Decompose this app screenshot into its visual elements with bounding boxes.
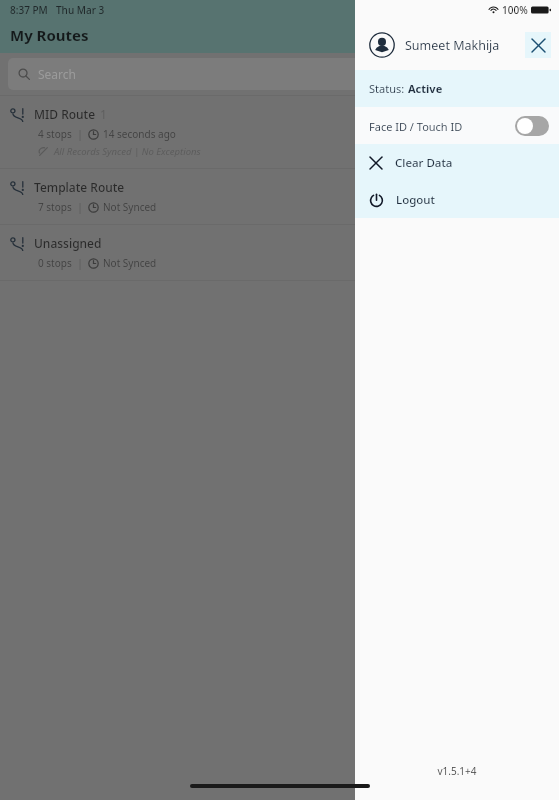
staticText: Clear Data: [395, 155, 453, 171]
staticText: Face ID / Touch ID: [369, 119, 463, 134]
staticText: 0 stops: [38, 256, 72, 270]
staticText: Search: [38, 66, 76, 82]
staticText: 14 seconds ago: [103, 127, 176, 141]
staticText: All Records Synced | No Exceptions: [54, 145, 201, 158]
staticText: 100%: [502, 3, 528, 17]
staticText: v1.5.1+4: [437, 764, 477, 778]
staticText: 1: [100, 106, 107, 122]
button[interactable]: Template Route: [0, 169, 559, 224]
staticText: Active: [408, 81, 443, 96]
button[interactable]: Unassigned: [0, 225, 559, 280]
staticText: 8:37 PM: [10, 3, 48, 17]
button[interactable]: Status:: [355, 70, 559, 107]
button[interactable]: Logout: [355, 181, 559, 218]
button[interactable]: Face ID toggle: [515, 116, 549, 136]
staticText: Thu Mar 3: [56, 3, 105, 17]
button[interactable]: Face ID / Touch ID: [355, 107, 559, 144]
staticText: Sumeet Makhija: [405, 37, 500, 54]
staticText: Logout: [396, 192, 435, 208]
staticText: MID Route: [34, 106, 96, 122]
button[interactable]: Close drawer: [525, 32, 551, 58]
staticText: Not Synced: [103, 200, 157, 214]
staticText: Unassigned: [34, 235, 102, 251]
staticText: Status:: [369, 81, 408, 96]
staticText: Not Synced: [103, 256, 157, 270]
staticText: My Routes: [10, 25, 89, 45]
staticText: Template Route: [34, 179, 125, 195]
button[interactable]: Search: [8, 58, 551, 90]
button[interactable]: Clear Data: [355, 144, 559, 181]
button[interactable]: MID Route: [0, 96, 559, 168]
staticText: 4 stops: [38, 127, 72, 141]
staticText: 7 stops: [38, 200, 72, 214]
